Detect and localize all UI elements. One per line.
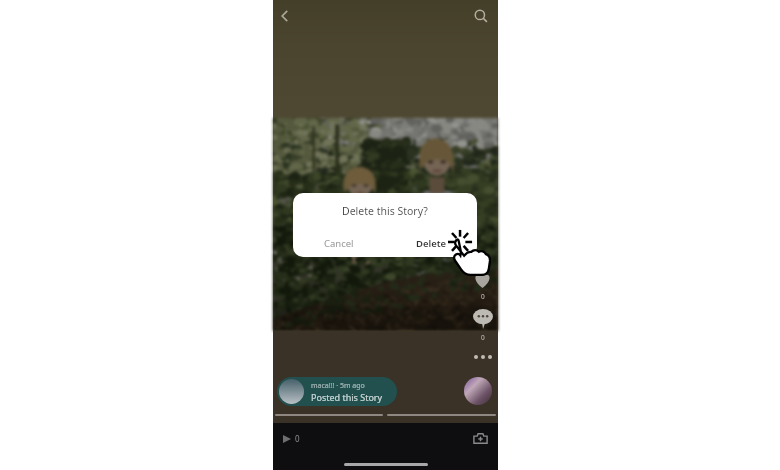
staticText: Cancel	[324, 237, 354, 250]
button[interactable]: Like	[469, 266, 496, 293]
staticText: Delete	[416, 237, 447, 250]
staticText: Delete this Story?	[342, 204, 428, 218]
button[interactable]: Delete	[385, 229, 477, 257]
button[interactable]: Search	[469, 4, 493, 28]
staticText: 0	[481, 333, 485, 342]
button[interactable]: Profile	[464, 377, 492, 405]
staticText: maca!!! · 5m ago	[311, 381, 365, 391]
button[interactable]: Comment	[470, 306, 495, 331]
staticText: 0	[295, 433, 300, 444]
button[interactable]: Cancel	[293, 229, 385, 257]
staticText: Posted this Story	[311, 391, 383, 403]
staticText: 0	[481, 292, 485, 301]
button[interactable]: 0	[281, 431, 302, 446]
button[interactable]: maca!!! · 5m ago	[277, 377, 397, 406]
button[interactable]: More options	[472, 353, 494, 361]
button[interactable]: Camera	[470, 428, 490, 448]
button[interactable]: Back	[273, 4, 297, 28]
